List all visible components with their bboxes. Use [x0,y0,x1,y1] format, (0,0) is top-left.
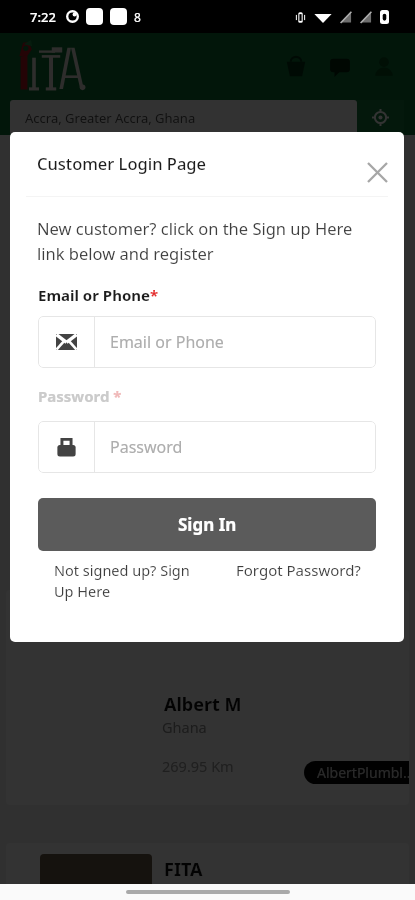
button[interactable]: Account [373,56,395,78]
button[interactable]: Sign In [38,498,376,551]
button[interactable]: Forgot Password? [236,560,361,580]
staticText: FITA [164,857,203,882]
button[interactable]: Email or Phone [38,316,376,368]
staticText: Email or Phone [110,331,224,353]
button[interactable]: Use my location [357,100,404,135]
staticText: Email or Phone* [38,285,159,305]
staticText: Albert M [164,692,242,717]
staticText: 269.95 Km [162,756,234,776]
staticText: Not signed up? Sign Up Here [54,560,212,602]
staticText: Ghana [162,717,207,737]
staticText: Customer Login Page [37,152,207,174]
staticText: Password * [38,386,122,406]
button[interactable]: Cart [285,56,307,78]
button[interactable]: FITA home [15,39,95,91]
staticText: New customer? click on the Sign up Here … [37,217,384,264]
staticText: AlbertPlumbl... [317,763,409,782]
staticText: Accra, Greater Accra, Ghana [25,109,196,127]
staticText: Password [110,436,183,458]
staticText: Accra, Ghana [162,882,252,900]
staticText: 8 [134,9,141,25]
button[interactable]: Accra, Greater Accra, Ghana [10,100,357,135]
staticText: 7:22 [30,8,56,26]
button[interactable]: Close [356,151,398,193]
staticText: Sign In [178,513,237,536]
button[interactable]: Chat [329,56,351,78]
staticText: Forgot Password? [236,560,361,580]
button[interactable]: Password [38,421,376,473]
button[interactable]: Not signed up? Sign Up Here [54,560,212,602]
